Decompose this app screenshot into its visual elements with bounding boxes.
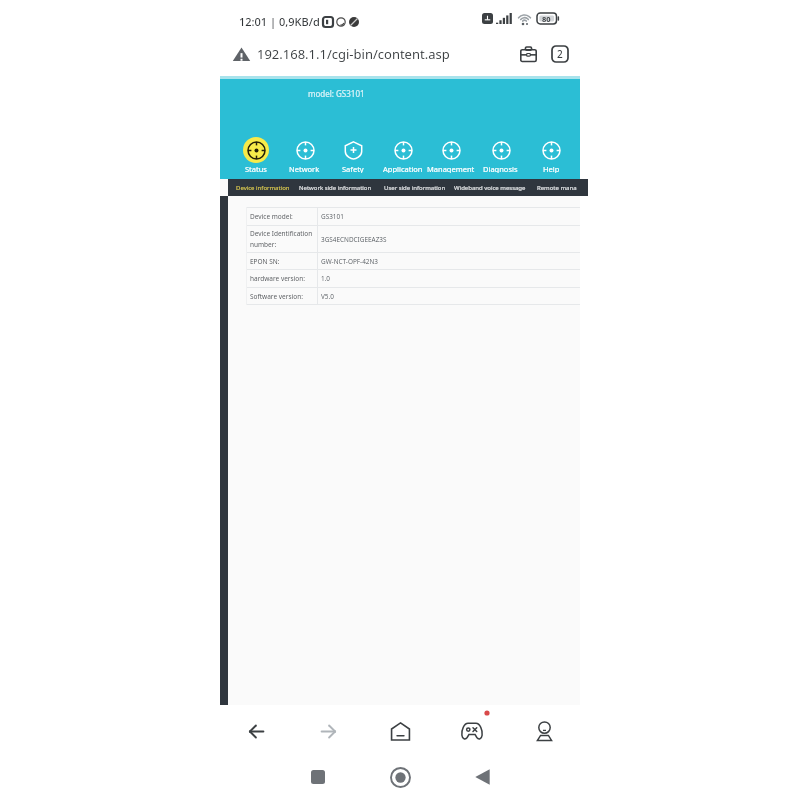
staticText: 80	[542, 14, 551, 24]
staticText: hardware version:	[250, 274, 306, 283]
staticText: 3GS4ECNDCIGEEAZ3S	[321, 235, 387, 244]
staticText: model: GS3101	[308, 88, 365, 99]
button[interactable]: Network side information	[299, 179, 372, 196]
button[interactable]: Network	[268, 137, 340, 173]
staticText: 12:01 | 0,9KB/d	[239, 14, 320, 29]
staticText: 2	[557, 47, 563, 61]
button[interactable]: Games	[455, 714, 489, 748]
button[interactable]: Wideband voice message	[454, 179, 526, 196]
button[interactable]: Management	[415, 137, 487, 173]
staticText: Network side information	[299, 184, 372, 192]
button[interactable]: Recents	[303, 762, 333, 792]
staticText: User side information	[384, 184, 446, 192]
staticText: V5.0	[321, 292, 334, 301]
button[interactable]: User side information	[384, 179, 446, 196]
button[interactable]: Home	[383, 714, 417, 748]
staticText: GW-NCT-OPF-42N3	[321, 257, 378, 266]
button[interactable]: Remote mana	[537, 179, 577, 196]
button[interactable]: Back	[467, 762, 497, 792]
button[interactable]: Profile	[527, 714, 561, 748]
staticText: Application	[383, 164, 423, 173]
staticText: Network	[289, 164, 320, 173]
button[interactable]: Device information	[236, 179, 290, 196]
staticText: Wideband voice message	[454, 184, 526, 192]
staticText: 1.0	[321, 274, 331, 283]
staticText: Device information	[236, 184, 290, 192]
staticText: Status	[245, 164, 267, 173]
button[interactable]: Back	[239, 714, 273, 748]
button[interactable]: Work profile	[515, 41, 541, 67]
staticText: Management	[427, 164, 475, 173]
button[interactable]: Forward	[311, 714, 345, 748]
button[interactable]: Status	[220, 137, 292, 173]
staticText: Software version:	[250, 292, 303, 301]
staticText: EPON SN:	[250, 257, 280, 266]
staticText: Device Identification number:	[250, 229, 313, 249]
button[interactable]: Tabs	[547, 41, 573, 67]
staticText: Help	[543, 164, 560, 173]
button[interactable]: Application	[367, 137, 439, 173]
staticText: Diagnosis	[483, 164, 518, 173]
staticText: GS3101	[321, 212, 344, 221]
staticText: Device model:	[250, 212, 293, 221]
staticText: Safety	[342, 164, 364, 173]
button[interactable]: Help	[515, 137, 587, 173]
button[interactable]: Diagnosis	[464, 137, 536, 173]
staticText: Remote mana	[537, 184, 577, 192]
button[interactable]: Safety	[317, 137, 389, 173]
button[interactable]: Home	[385, 762, 415, 792]
staticText: 192.168.1.1/cgi-bin/content.asp	[257, 45, 450, 63]
